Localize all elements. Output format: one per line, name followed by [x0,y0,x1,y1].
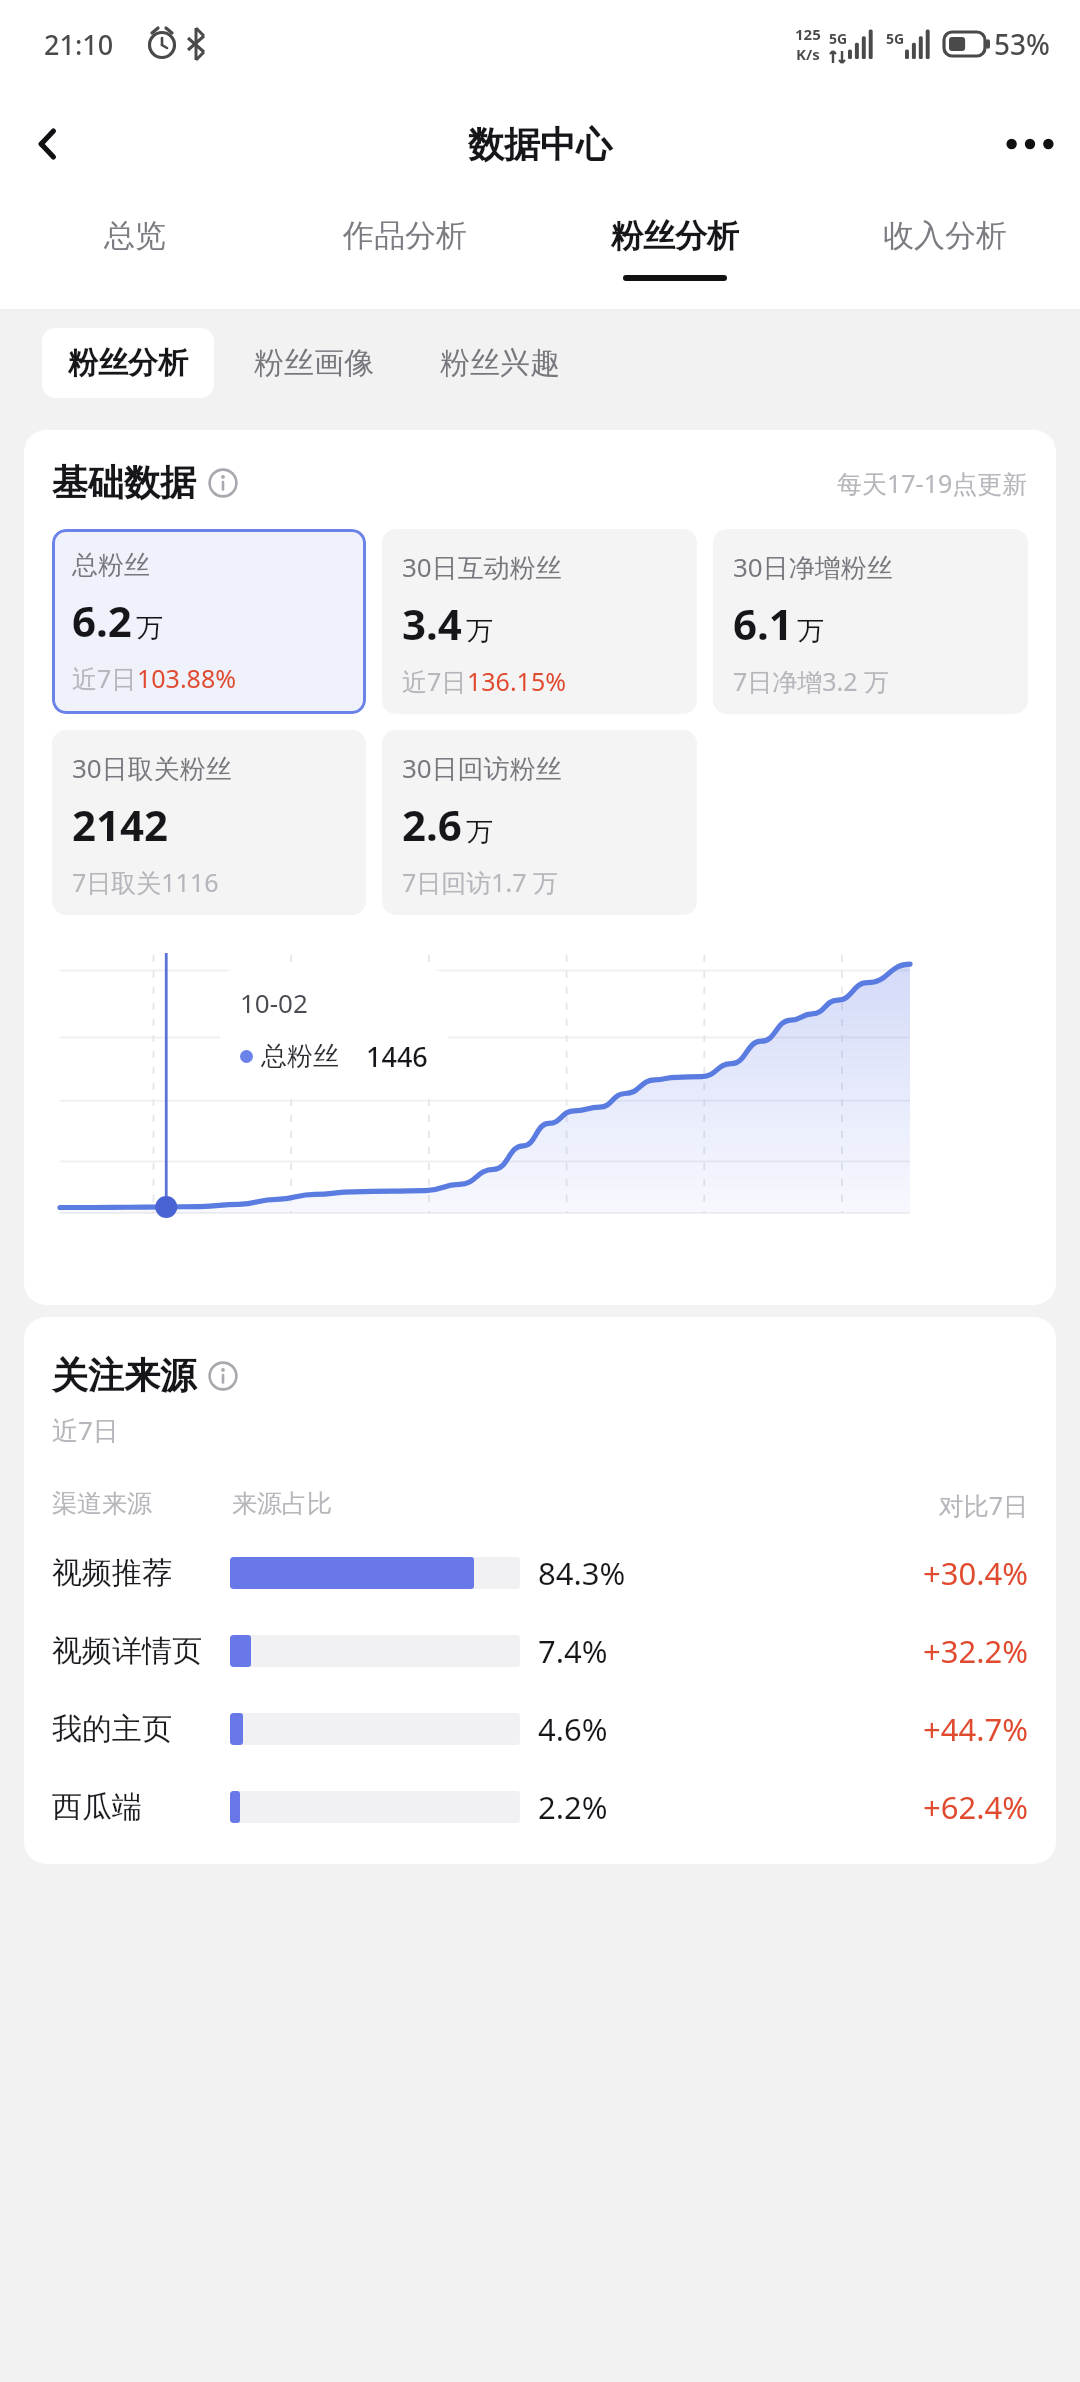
button[interactable]: 总粉丝 [52,529,366,714]
staticText: 万 [797,614,824,648]
staticText: 2.6 [402,796,462,853]
staticText: 30日互动粉丝 [402,549,562,585]
button[interactable]: Info [208,1361,238,1391]
staticText: 西瓜端 [52,1788,230,1826]
button[interactable]: 总览 [0,200,270,310]
staticText: 粉丝分析 [611,216,739,256]
staticText: 来源占比 [232,1488,938,1519]
staticText: 30日回访粉丝 [402,750,562,786]
staticText: 渠道来源 [52,1488,232,1519]
button[interactable]: 30日取关粉丝 [52,730,366,915]
button[interactable]: 粉丝画像 [228,328,400,398]
button[interactable]: 粉丝兴趣 [414,328,586,398]
staticText: 7日取关1116 [72,865,219,899]
staticText: 我的主页 [52,1710,230,1748]
staticText: 6.1 [733,595,793,652]
button[interactable]: 作品分析 [270,200,540,310]
staticText: 6.2 [72,592,132,649]
staticText: 万 [136,611,163,645]
staticText: 粉丝画像 [254,344,374,382]
staticText: +62.4% [923,1786,1028,1828]
staticText: 2142 [72,796,169,853]
button[interactable]: 西瓜端 [52,1786,1028,1828]
button[interactable]: Info [208,468,238,498]
staticText: 近7日 [402,664,467,698]
button[interactable]: 视频详情页 [52,1630,1028,1672]
staticText: 关注来源 [52,1353,196,1398]
staticText: 3.4 [402,595,462,652]
staticText: 每天17-19点更新 [837,466,1028,500]
staticText: 21:10 [44,26,114,63]
staticText: 万 [466,815,493,849]
staticText: 125 [795,24,821,44]
staticText: +44.7% [923,1708,1028,1750]
staticText: 7日净增3.2 万 [733,664,890,698]
staticText: 10-02 [240,985,308,1020]
staticText: 4.6% [538,1708,608,1750]
staticText: 视频详情页 [52,1632,230,1670]
button[interactable]: 我的主页 [52,1708,1028,1750]
staticText: 视频推荐 [52,1554,230,1592]
button[interactable]: 粉丝分析 [42,328,214,398]
staticText: 总粉丝 [72,549,150,582]
staticText: 粉丝兴趣 [440,344,560,382]
button[interactable]: 30日回访粉丝 [382,730,697,915]
button[interactable]: 30日净增粉丝 [713,529,1028,714]
button[interactable]: 30日互动粉丝 [382,529,697,714]
staticText: 总览 [104,216,166,255]
staticText: 近7日 [72,661,137,695]
staticText: 2.2% [538,1786,608,1828]
staticText: 103.88% [137,661,236,695]
staticText: 万 [466,614,493,648]
staticText: 对比7日 [938,1488,1028,1522]
staticText: 5G [886,29,905,48]
staticText: 84.3% [538,1552,626,1594]
staticText: +30.4% [923,1552,1028,1594]
staticText: 30日取关粉丝 [72,750,232,786]
staticText: 总粉丝 [261,1040,339,1073]
staticText: 30日净增粉丝 [733,549,893,585]
staticText: 粉丝分析 [68,344,188,382]
staticText: 数据中心 [468,122,612,167]
staticText: 136.15% [467,664,566,698]
staticText: 作品分析 [343,216,467,255]
staticText: 5G [829,29,848,48]
button[interactable]: 视频推荐 [52,1552,1028,1594]
staticText: 1446 [366,1038,428,1075]
staticText: 7日回访1.7 万 [402,865,559,899]
staticText: +32.2% [923,1630,1028,1672]
staticText: 7.4% [538,1630,608,1672]
staticText: 53% [994,25,1050,63]
staticText: K/s [796,44,820,64]
staticText: 近7日 [52,1412,119,1448]
staticText: 基础数据 [52,460,196,505]
button[interactable]: More options [980,94,1080,194]
button[interactable]: Back [0,96,96,192]
staticText: 收入分析 [883,216,1007,255]
button[interactable]: 粉丝分析 [540,200,810,310]
button[interactable]: 收入分析 [810,200,1080,310]
